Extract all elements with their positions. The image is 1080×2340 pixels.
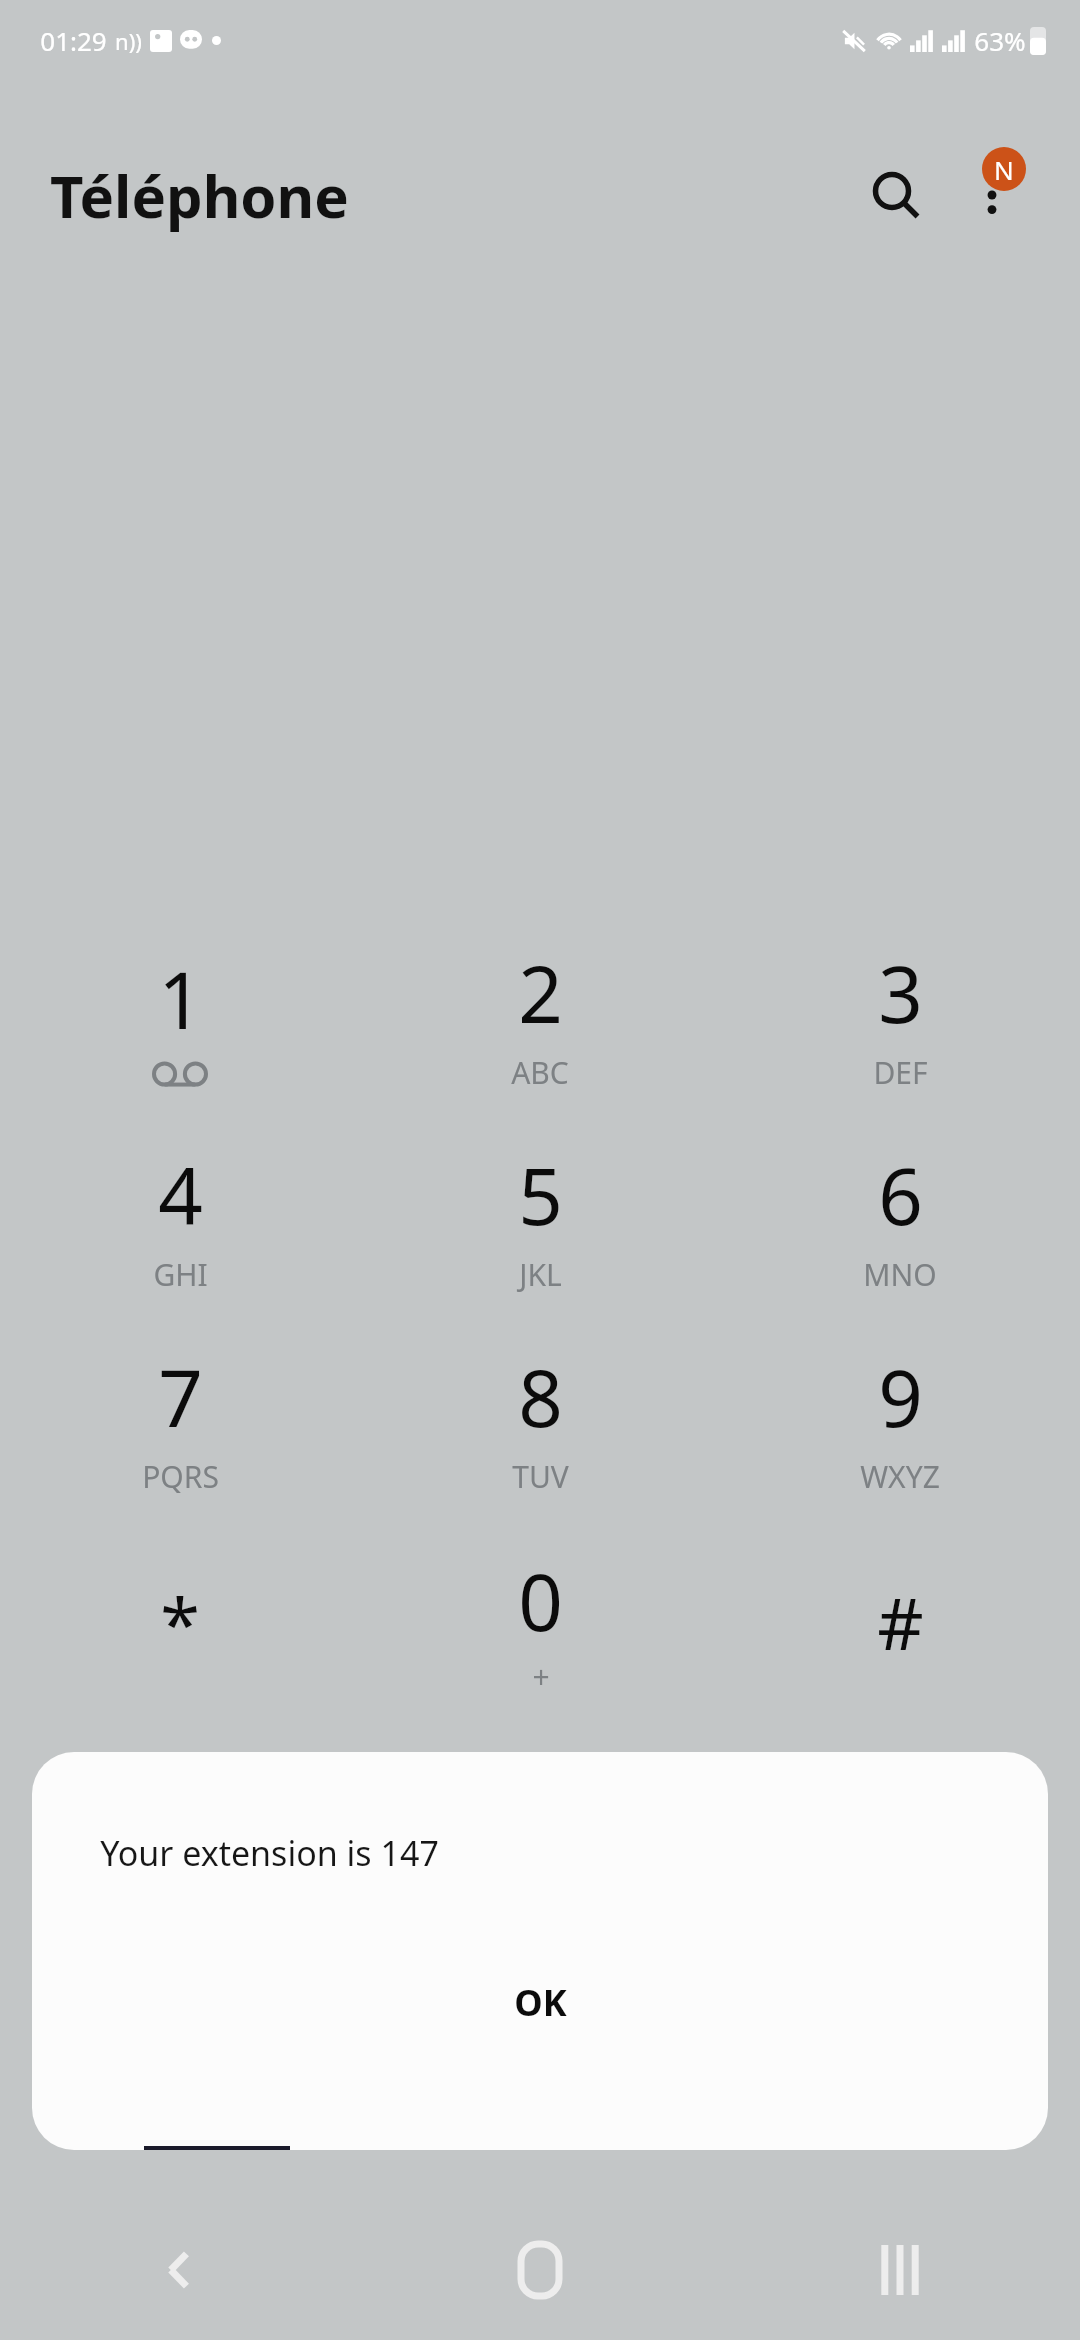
staticText: TUV xyxy=(512,1456,569,1497)
staticText: 7 xyxy=(158,1344,203,1450)
staticText: 1 xyxy=(158,946,203,1052)
button[interactable]: 8 xyxy=(360,1319,720,1521)
staticText: GHI xyxy=(153,1254,208,1295)
staticText: 3 xyxy=(878,940,923,1046)
staticText: + xyxy=(532,1656,550,1697)
staticText: * xyxy=(160,1573,200,1671)
staticText: 6 xyxy=(878,1142,923,1248)
staticText: Téléphone xyxy=(50,156,349,235)
staticText: # xyxy=(877,1573,924,1671)
button[interactable]: 6 xyxy=(720,1117,1080,1319)
button[interactable]: 7 xyxy=(0,1319,360,1521)
staticText: N xyxy=(994,152,1014,187)
staticText: MNO xyxy=(863,1254,937,1295)
staticText: OK xyxy=(514,1978,567,2027)
button[interactable]: * xyxy=(0,1521,360,1723)
staticText: 0 xyxy=(518,1548,563,1654)
button[interactable]: 9 xyxy=(720,1319,1080,1521)
staticText: 63% xyxy=(974,23,1026,58)
button[interactable]: 4 xyxy=(0,1117,360,1319)
button[interactable]: 5 xyxy=(360,1117,720,1319)
button[interactable]: Home xyxy=(360,2200,720,2340)
staticText: 9 xyxy=(878,1344,923,1450)
button[interactable]: Téléphone xyxy=(40,148,359,243)
button[interactable]: 2 xyxy=(360,915,720,1117)
staticText: 2 xyxy=(518,940,563,1046)
button[interactable]: # xyxy=(720,1521,1080,1723)
staticText: 01:29 xyxy=(40,23,107,58)
button[interactable]: Search xyxy=(848,147,944,243)
button[interactable]: Back xyxy=(0,2200,360,2340)
staticText: ABC xyxy=(511,1052,569,1093)
staticText: 4 xyxy=(158,1142,203,1248)
staticText: DEF xyxy=(873,1052,928,1093)
staticText: 5 xyxy=(518,1142,563,1248)
staticText: PQRS xyxy=(142,1456,219,1497)
button[interactable]: More options xyxy=(944,147,1040,243)
button[interactable]: 0 xyxy=(360,1521,720,1723)
staticText: WXYZ xyxy=(860,1456,940,1497)
staticText: Your extension is 147 xyxy=(100,1830,439,1876)
button[interactable]: Recent apps xyxy=(720,2200,1080,2340)
staticText: 8 xyxy=(518,1344,563,1450)
staticText: JKL xyxy=(519,1254,562,1295)
staticText: n)) xyxy=(115,26,142,56)
button[interactable]: 1 xyxy=(0,915,360,1117)
button[interactable]: OK xyxy=(464,1960,617,2045)
button[interactable]: 3 xyxy=(720,915,1080,1117)
